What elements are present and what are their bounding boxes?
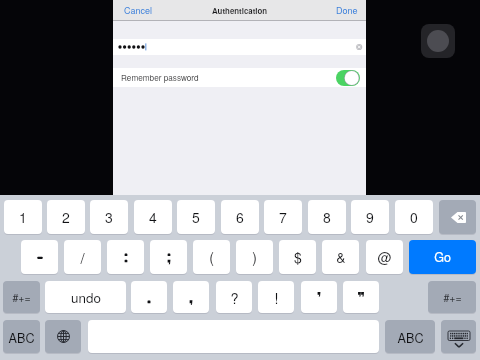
staticText: 0 [410,207,418,227]
staticText: Authentication [212,5,268,16]
staticText: 1 [19,207,27,227]
staticText: ABC [397,328,424,346]
button[interactable]: 1 [4,200,42,234]
button[interactable]: App icon [421,24,455,58]
button[interactable]: Semicolon [150,240,187,274]
staticText: $ [294,247,302,267]
button[interactable]: Remember password toggle [336,70,360,86]
button[interactable]: #+= [3,281,40,313]
staticText: 8 [323,207,331,227]
button[interactable]: 4 [134,200,172,234]
staticText: 3 [105,207,113,227]
staticText: 6 [236,207,244,227]
button[interactable]: #+= [428,281,476,313]
staticText: 9 [366,207,374,227]
staticText: 5 [192,207,200,227]
button[interactable]: 2 [47,200,85,234]
staticText: ! [274,287,279,308]
button[interactable]: Delete [439,200,476,234]
staticText: Remember password [121,72,199,84]
button[interactable]: Apostrophe [301,281,337,313]
staticText: & [336,247,346,267]
button[interactable]: Colon [107,240,144,274]
staticText: / [80,247,85,268]
button[interactable]: 6 [221,200,259,234]
button[interactable]: 3 [90,200,128,234]
staticText: @ [377,247,392,267]
button[interactable]: 5 [177,200,215,234]
button[interactable]: / [64,240,101,274]
button[interactable]: $ [279,240,316,274]
button[interactable]: Switch keyboard [45,320,81,353]
button[interactable]: Cancel [113,1,161,20]
button[interactable]: 7 [264,200,302,234]
button[interactable]: ) [236,240,273,274]
staticText: #+= [12,290,31,305]
staticText: 7 [279,207,287,227]
button[interactable]: undo [45,281,126,313]
staticText: 4 [149,207,157,227]
button[interactable]: ? [216,281,252,313]
staticText: ) [252,247,257,267]
button[interactable]: @ [366,240,403,274]
button[interactable]: ! [258,281,294,313]
button[interactable]: Remember password [113,68,366,87]
button[interactable]: Comma [173,281,209,313]
staticText: 2 [62,207,70,227]
staticText: ABC [8,328,35,346]
button[interactable]: Hyphen [21,240,58,274]
button[interactable]: Period [131,281,167,313]
button[interactable]: Quotation mark [343,281,379,313]
button[interactable]: 8 [308,200,346,234]
button[interactable]: Done [328,1,366,20]
button[interactable]: & [322,240,359,274]
button[interactable]: ( [193,240,230,274]
button[interactable]: 0 [395,200,433,234]
staticText: ( [209,247,214,267]
button[interactable] [113,39,366,55]
button[interactable]: 9 [351,200,389,234]
button[interactable]: Hide keyboard [441,320,476,353]
staticText: ? [230,287,239,308]
button[interactable]: ABC [385,320,435,353]
button[interactable]: Go [409,240,476,274]
staticText: Go [434,248,451,266]
staticText: #+= [443,290,462,305]
staticText: undo [71,288,101,307]
button[interactable]: ABC [3,320,40,353]
